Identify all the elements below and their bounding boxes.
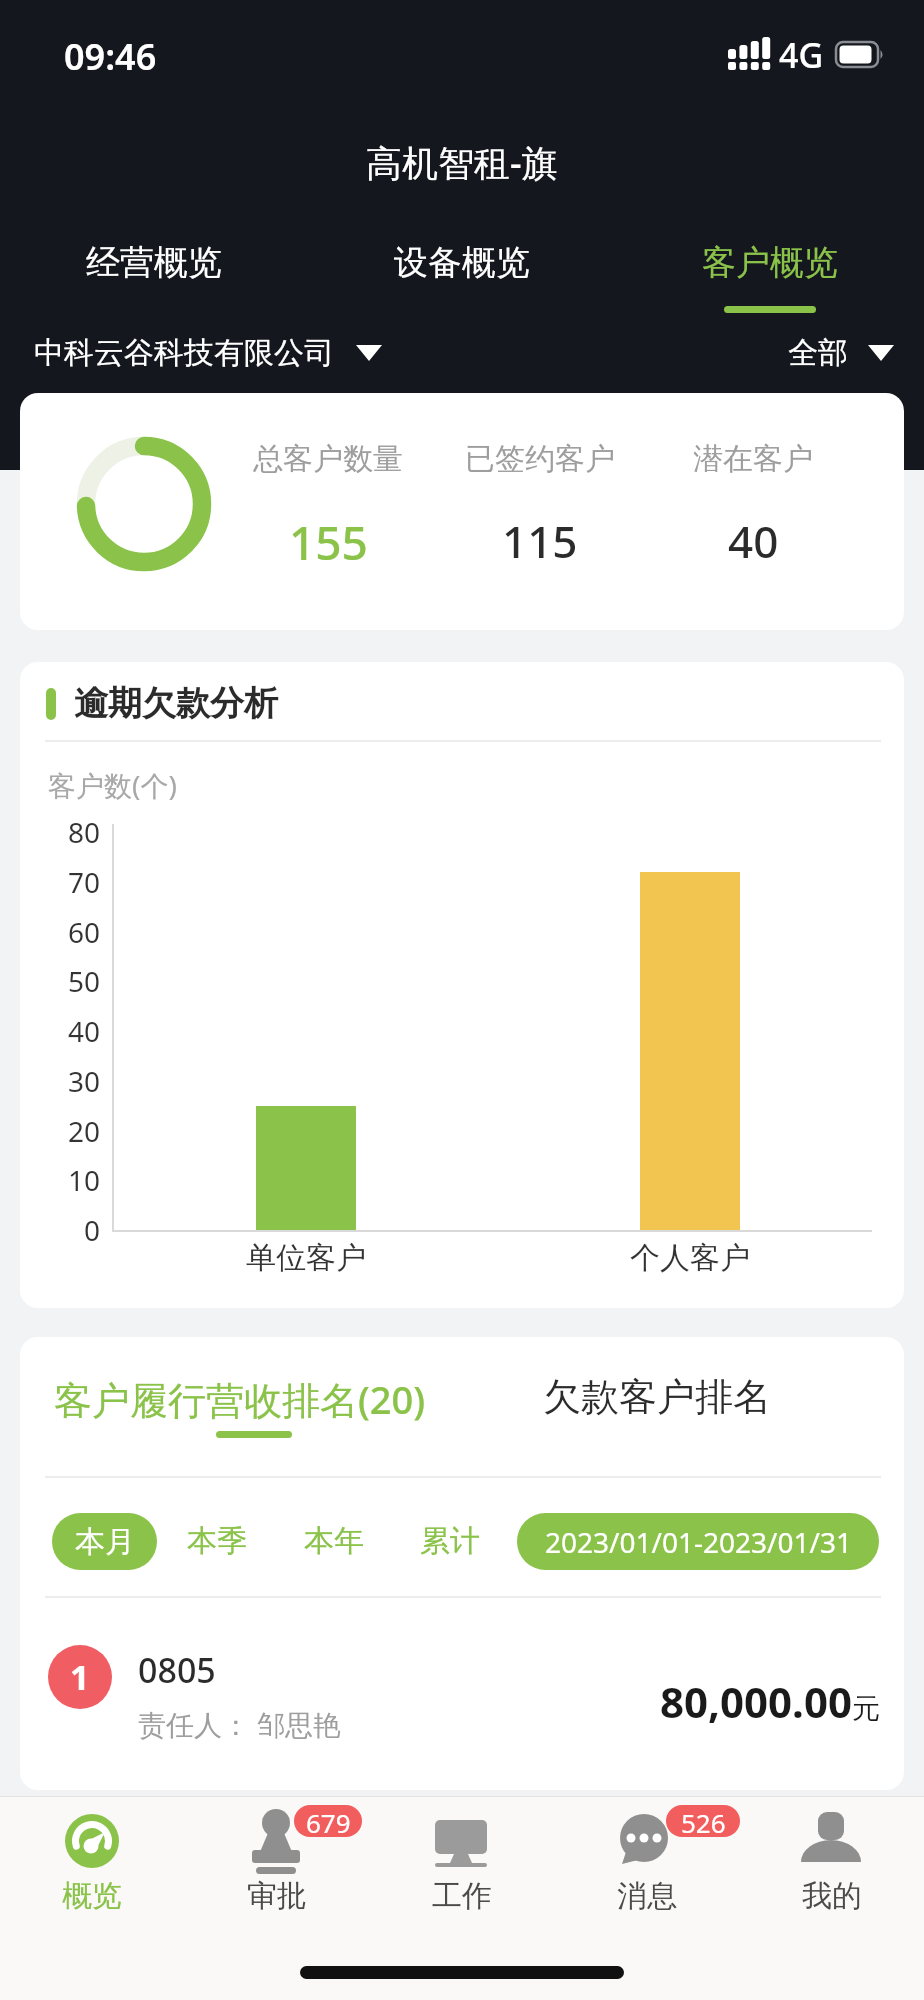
staticText: 115 <box>502 511 578 567</box>
button[interactable]: 客户履行营收排名(20) <box>54 1373 426 1425</box>
staticText: 高机智租-旗 <box>366 138 558 186</box>
button[interactable]: 概览 <box>0 1796 184 1930</box>
staticText: 40 <box>728 511 779 567</box>
staticText: 经营概览 <box>86 241 222 284</box>
staticText: 0805 <box>138 1647 216 1693</box>
staticText: 60 <box>67 913 100 951</box>
staticText: 本月 <box>75 1523 135 1561</box>
button[interactable]: 设备概览 <box>308 238 616 286</box>
staticText: 已签约客户 <box>465 440 615 478</box>
button[interactable]: 审批 <box>184 1796 369 1930</box>
button[interactable]: 客户概览 <box>616 238 924 286</box>
staticText: 679 <box>306 1805 351 1837</box>
staticText: 80,000.00 <box>660 1673 852 1729</box>
button[interactable]: 全部 <box>788 334 894 372</box>
staticText: 审批 <box>247 1877 307 1915</box>
staticText: 40 <box>67 1012 100 1050</box>
staticText: 1 <box>70 1654 90 1700</box>
staticText: 中科云谷科技有限公司 <box>34 334 334 372</box>
staticText: 逾期欠款分析 <box>74 682 278 725</box>
staticText: 设备概览 <box>394 241 530 284</box>
button[interactable]: 我的 <box>739 1796 924 1930</box>
button[interactable]: 欠款客户排名 <box>543 1373 771 1421</box>
staticText: 元 <box>852 1691 880 1726</box>
staticText: 80 <box>67 813 100 851</box>
staticText: 潜在客户 <box>693 440 813 478</box>
staticText: 概览 <box>62 1877 122 1915</box>
staticText: 2023/01/01-2023/01/31 <box>545 1523 852 1561</box>
staticText: 09:46 <box>64 32 157 81</box>
button[interactable] <box>20 1627 904 1737</box>
button[interactable]: 消息 <box>554 1796 739 1930</box>
staticText: 全部 <box>788 334 848 372</box>
staticText: 客户概览 <box>702 241 838 284</box>
staticText: 本年 <box>304 1522 364 1560</box>
staticText: 总客户数量 <box>253 440 403 478</box>
button[interactable]: 本月 <box>52 1513 157 1570</box>
staticText: 526 <box>681 1805 726 1837</box>
staticText: 个人客户 <box>630 1239 750 1277</box>
button[interactable]: 中科云谷科技有限公司 <box>34 332 382 374</box>
staticText: 30 <box>67 1062 100 1100</box>
staticText: 客户数(个) <box>48 766 177 804</box>
staticText: 10 <box>67 1161 100 1199</box>
staticText: 50 <box>67 962 100 1000</box>
staticText: 我的 <box>802 1877 862 1915</box>
staticText: 70 <box>67 863 100 901</box>
staticText: 0 <box>83 1211 100 1249</box>
staticText: 累计 <box>420 1522 480 1560</box>
button[interactable]: 经营概览 <box>0 238 308 286</box>
staticText: 责任人： 邹思艳 <box>138 1705 342 1743</box>
staticText: 20 <box>67 1112 100 1150</box>
button[interactable]: 工作 <box>369 1796 554 1930</box>
staticText: 工作 <box>432 1877 492 1915</box>
staticText: 单位客户 <box>246 1239 366 1277</box>
staticText: 消息 <box>617 1877 677 1915</box>
staticText: 155 <box>289 511 368 567</box>
button[interactable]: 2023/01/01-2023/01/31 <box>517 1513 879 1570</box>
staticText: 本季 <box>187 1522 247 1560</box>
staticText: 4G <box>779 32 824 78</box>
